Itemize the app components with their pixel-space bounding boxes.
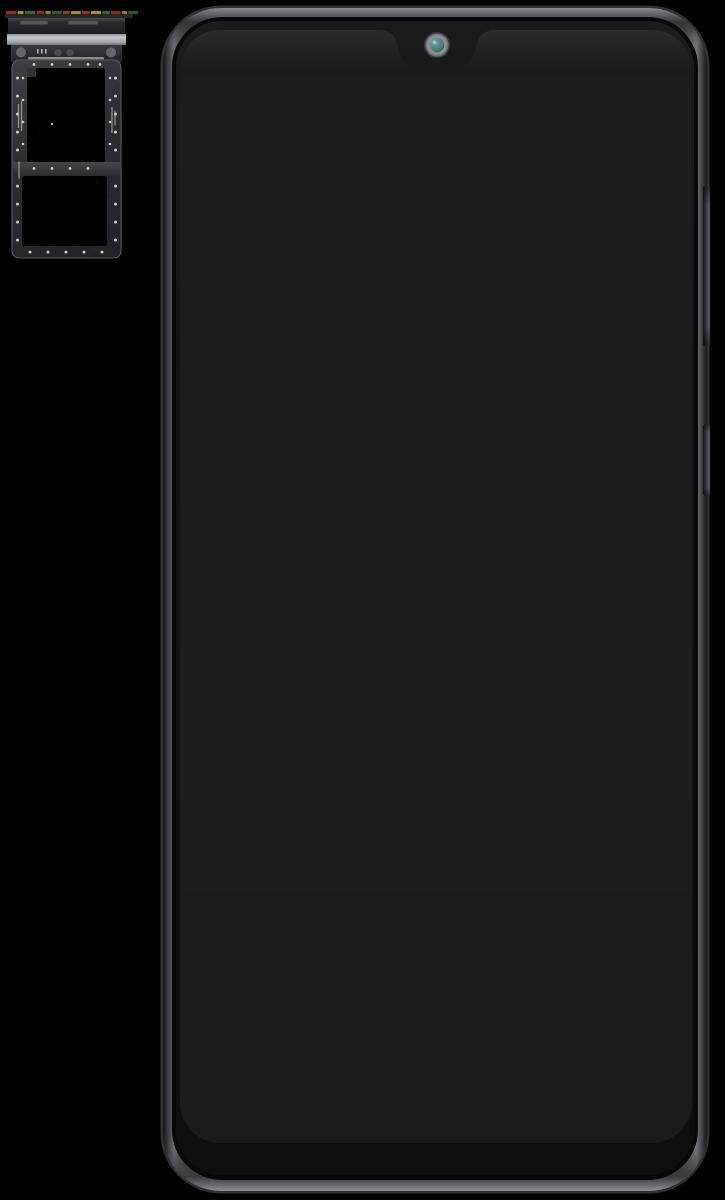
button[interactable]: Smartphone front view with SIM card tray xyxy=(0,0,725,1200)
